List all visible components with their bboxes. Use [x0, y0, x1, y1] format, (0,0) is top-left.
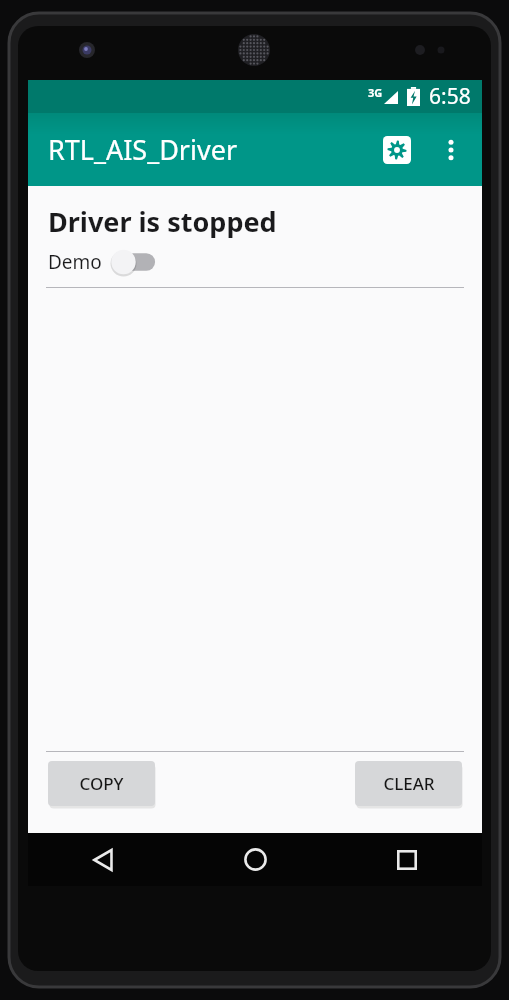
staticText: 3G: [368, 85, 383, 100]
button[interactable]: COPY: [48, 761, 155, 806]
button[interactable]: Home: [180, 833, 331, 886]
staticText: Driver is stopped: [48, 203, 277, 240]
staticText: Demo: [48, 249, 102, 275]
button[interactable]: More options: [425, 124, 477, 176]
button[interactable]: Recent apps: [331, 833, 482, 886]
button[interactable]: CLEAR: [355, 761, 462, 806]
button[interactable]: Settings: [369, 122, 425, 178]
button[interactable]: Demo: [48, 246, 156, 278]
staticText: COPY: [79, 772, 124, 795]
button[interactable]: Back: [28, 833, 180, 886]
staticText: 6:58: [429, 82, 471, 111]
staticText: CLEAR: [383, 772, 435, 795]
staticText: RTL_AIS_Driver: [48, 131, 238, 168]
